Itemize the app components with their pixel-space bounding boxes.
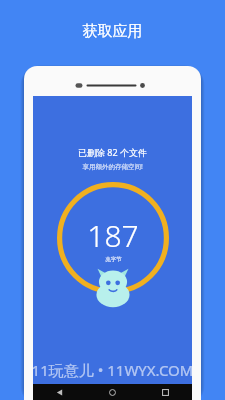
staticText: 11玩意儿 • 11WYX.COM	[0, 360, 225, 380]
button[interactable]: Back	[33, 384, 86, 400]
staticText: 享用额外的存储空间!	[82, 162, 143, 171]
staticText: 187	[87, 215, 139, 256]
staticText: 兆字节	[105, 256, 122, 263]
button[interactable]: Home	[86, 384, 139, 400]
staticText: 已删除 82 个文件	[78, 146, 147, 158]
staticText: 获取应用	[0, 22, 225, 41]
button[interactable]: Recent apps	[139, 384, 192, 400]
